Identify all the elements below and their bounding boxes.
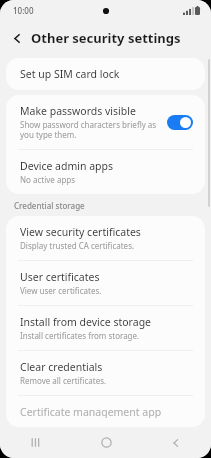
- staticText: User certificates: [20, 270, 100, 284]
- button[interactable]: Clear credentials: [6, 351, 205, 395]
- button[interactable]: View security certificates: [6, 216, 205, 260]
- staticText: Remove all certificates.: [20, 375, 107, 386]
- button[interactable]: Install from device storage: [6, 306, 205, 350]
- staticText: Certificate management app: [20, 405, 162, 418]
- staticText: Credential storage: [14, 200, 85, 211]
- button[interactable]: Back: [141, 427, 211, 458]
- staticText: No active apps: [20, 174, 76, 185]
- staticText: Other security settings: [31, 29, 181, 47]
- staticText: View security certificates: [20, 225, 141, 239]
- staticText: Install certificates from storage.: [20, 330, 140, 341]
- button[interactable]: Device admin apps: [6, 150, 205, 194]
- button[interactable]: User certificates: [6, 261, 205, 305]
- staticText: 10:00: [13, 5, 34, 16]
- staticText: Make passwords visible: [20, 104, 136, 118]
- staticText: Clear credentials: [20, 360, 103, 374]
- staticText: Set up SIM card lock: [20, 67, 120, 81]
- staticText: Display trusted CA certificates.: [20, 240, 135, 251]
- staticText: Show password characters briefly as you …: [20, 119, 161, 140]
- button[interactable]: Navigate up: [5, 26, 29, 50]
- staticText: View user certificates.: [20, 285, 102, 296]
- staticText: Install from device storage: [20, 315, 152, 329]
- button[interactable]: Make passwords visible: [6, 95, 205, 149]
- button[interactable]: Recent apps: [0, 427, 71, 458]
- staticText: Device admin apps: [20, 159, 114, 173]
- button[interactable]: Home: [71, 427, 141, 458]
- button[interactable]: Set up SIM card lock: [6, 58, 205, 90]
- button[interactable]: Certificate management app: [6, 396, 205, 427]
- button[interactable]: Make passwords visible toggle, on: [167, 115, 193, 130]
